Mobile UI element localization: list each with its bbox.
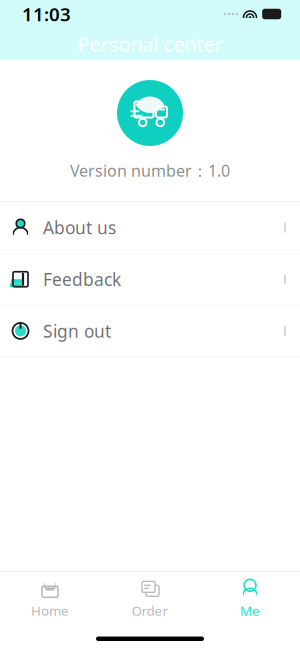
staticText: Me (240, 602, 260, 619)
button[interactable]: Sign out (0, 305, 300, 357)
staticText: Home (31, 602, 69, 619)
button[interactable]: Home (0, 572, 100, 625)
staticText: Feedback (43, 268, 121, 291)
staticText: Sign out (43, 319, 111, 342)
button[interactable]: About us (0, 202, 300, 254)
button[interactable]: Order (100, 572, 200, 625)
staticText: Order (131, 602, 168, 619)
staticText: 11:03 (22, 2, 71, 26)
button[interactable]: Me (200, 572, 300, 625)
staticText: About us (43, 216, 116, 239)
staticText: Personal center (77, 31, 222, 57)
staticText: Version number：1.0 (70, 160, 230, 181)
button[interactable]: Feedback (0, 254, 300, 305)
